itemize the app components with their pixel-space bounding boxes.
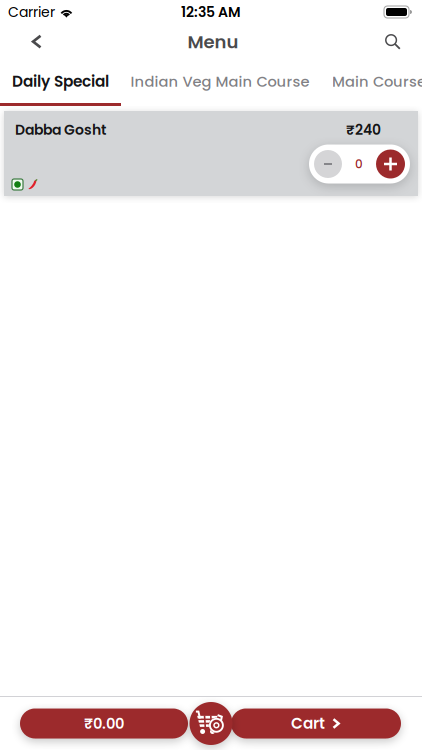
button[interactable]: Decrease quantity [314, 150, 342, 178]
staticText: Indian Veg Main Course [130, 71, 309, 92]
button[interactable]: Main Course [319, 60, 422, 106]
button[interactable]: Increase quantity [376, 149, 405, 178]
button[interactable]: ₹0.00 [20, 708, 188, 738]
button[interactable]: Indian Veg Main Course [121, 60, 319, 106]
staticText: 12:35 AM [181, 2, 241, 22]
button[interactable]: Cart [231, 708, 401, 738]
staticText: Main Course [332, 71, 422, 92]
button[interactable]: Daily Special [0, 60, 121, 106]
staticText: ₹0.00 [84, 713, 124, 734]
staticText: Carrier [8, 2, 55, 22]
staticText: 0 [355, 156, 363, 172]
button[interactable]: Search [373, 24, 422, 60]
button[interactable]: Back [0, 24, 57, 60]
staticText: Dabba Gosht [15, 120, 106, 140]
button[interactable]: View cart [189, 702, 232, 745]
staticText: ₹240 [346, 120, 381, 140]
staticText: Daily Special [12, 71, 109, 92]
staticText: Cart [291, 713, 325, 734]
staticText: Menu [187, 29, 238, 55]
